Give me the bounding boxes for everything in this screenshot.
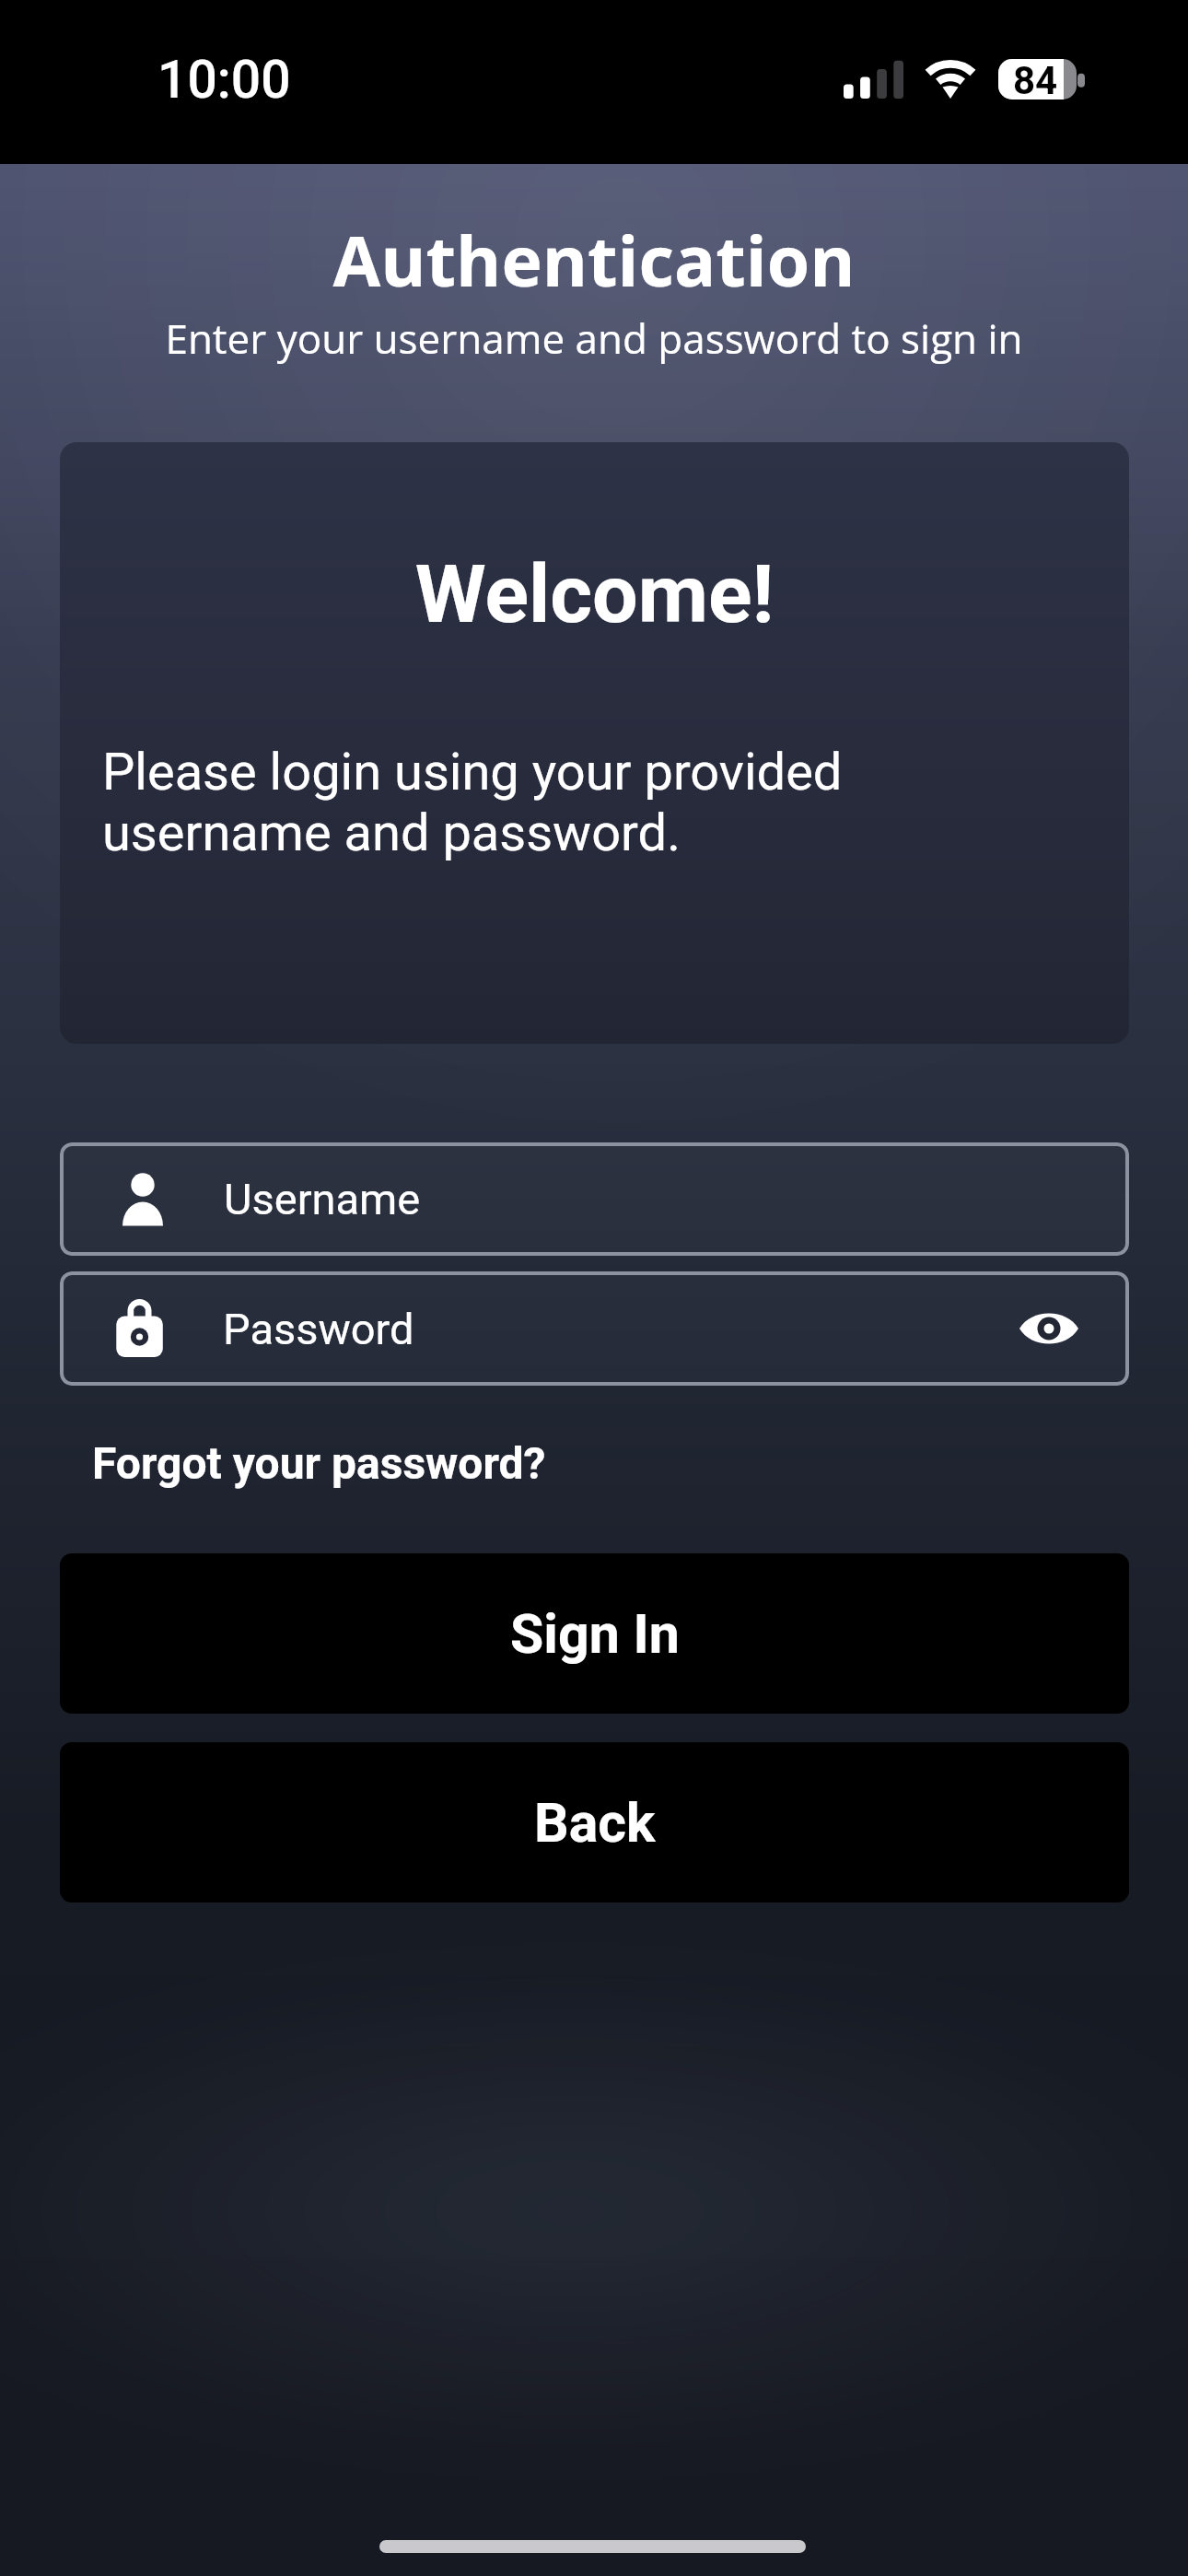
staticText: 10:00 xyxy=(157,49,291,111)
button[interactable]: Forgot your password? xyxy=(83,1432,555,1494)
staticText: 84 xyxy=(1013,58,1058,103)
staticText: Enter your username and password to sign… xyxy=(0,310,1188,366)
staticText: Password xyxy=(223,1304,414,1354)
staticText: Authentication xyxy=(0,213,1188,307)
staticText: Forgot your password? xyxy=(92,1437,546,1489)
button[interactable]: Username xyxy=(60,1142,1129,1256)
staticText: Welcome! xyxy=(60,546,1129,641)
staticText: Please login using your provided usernam… xyxy=(102,742,913,863)
staticText: Back xyxy=(534,1791,656,1855)
button[interactable]: Show password xyxy=(998,1271,1100,1386)
button[interactable]: Sign In xyxy=(60,1553,1129,1714)
button[interactable]: Password xyxy=(60,1271,1129,1386)
staticText: Username xyxy=(224,1174,421,1224)
button[interactable]: Back xyxy=(60,1742,1129,1903)
staticText: Sign In xyxy=(510,1602,680,1666)
